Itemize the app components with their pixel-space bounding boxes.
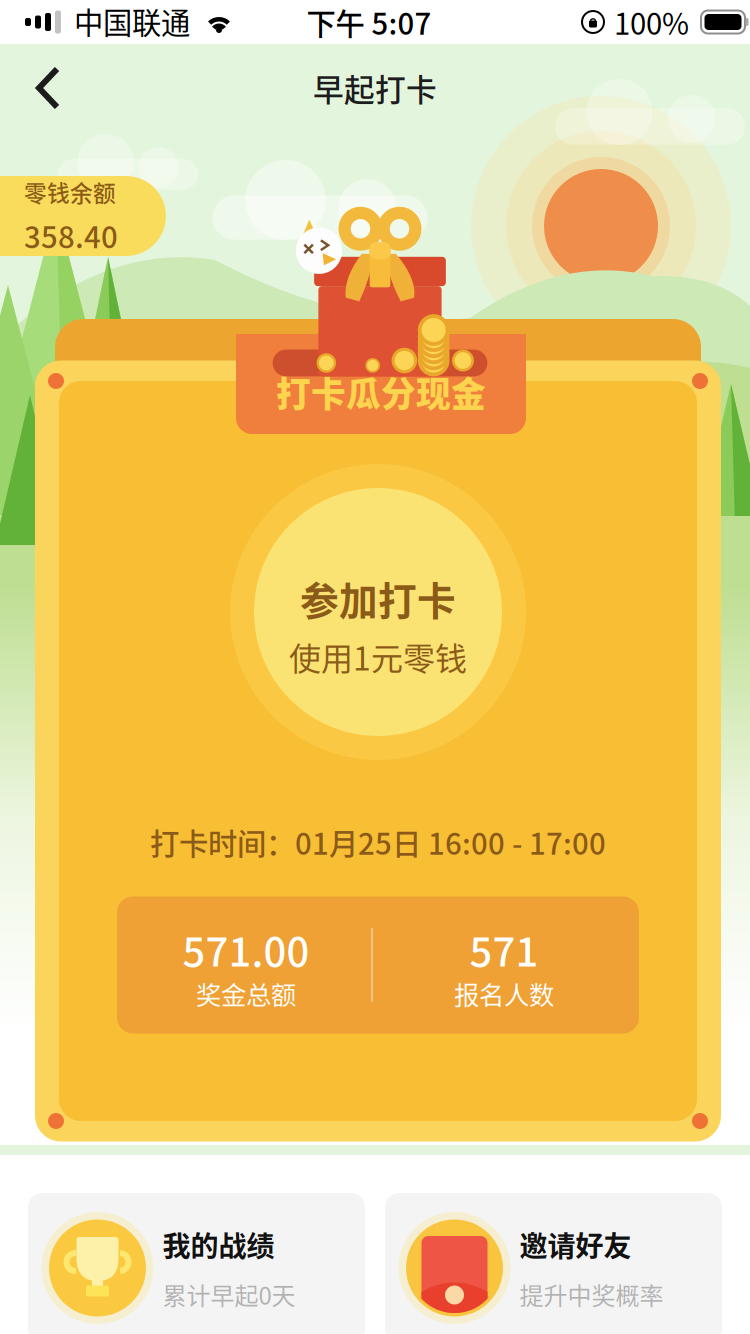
staticText: 358.40	[24, 214, 118, 257]
staticText: 零钱余额	[24, 175, 116, 208]
staticText: 参加打卡	[300, 570, 456, 626]
button[interactable]: 返回	[0, 44, 96, 132]
button[interactable]: 参加打卡	[230, 464, 526, 760]
staticText: 早起打卡	[313, 66, 437, 110]
staticText: 打卡时间：01月25日 16:00 - 17:00	[150, 821, 606, 863]
staticText: 中国联通	[74, 0, 190, 42]
staticText: 使用1元零钱	[289, 633, 467, 680]
staticText: 我的战绩	[162, 1224, 274, 1265]
staticText: 提升中奖概率	[519, 1277, 663, 1312]
staticText: 打卡瓜分现金	[276, 367, 486, 417]
staticText: 571	[469, 920, 538, 978]
staticText: 邀请好友	[519, 1224, 631, 1265]
button[interactable]: 邀请好友	[385, 1193, 722, 1334]
staticText: 奖金总额	[196, 975, 296, 1012]
button[interactable]: 我的战绩	[28, 1193, 365, 1334]
staticText: 累计早起0天	[162, 1277, 295, 1312]
staticText: 下午 5:07	[306, 1, 431, 43]
staticText: 报名人数	[454, 975, 554, 1012]
staticText: 571.00	[182, 920, 309, 978]
staticText: 100%	[614, 1, 689, 43]
